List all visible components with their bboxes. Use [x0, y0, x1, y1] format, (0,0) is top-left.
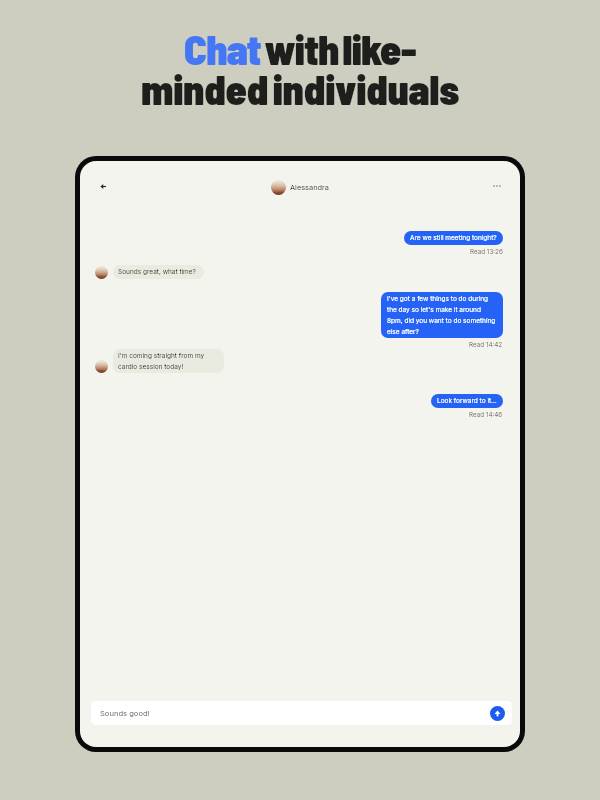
staticText: I've got a few things to do during the d… [387, 295, 497, 335]
staticText: I'm coming straight from my cardio sessi… [118, 352, 219, 370]
button[interactable]: Are we still meeting tonight? [404, 231, 503, 245]
button[interactable]: I've got a few things to do during the d… [381, 292, 503, 338]
staticText: Sounds good! [100, 709, 150, 718]
staticText: Sounds great, what time? [118, 268, 196, 276]
staticText: Read 14:46 [469, 411, 503, 419]
staticText: Read 13:26 [470, 248, 503, 256]
button[interactable]: Back [91, 174, 115, 198]
button[interactable]: Send [490, 706, 505, 721]
button[interactable]: Sounds good! [91, 701, 512, 725]
staticText: Chat with like- [184, 23, 416, 73]
staticText: minded individuals [141, 63, 459, 113]
staticText: Look forward to it... [437, 397, 497, 405]
staticText: Alessandra [290, 183, 329, 192]
button[interactable]: I'm coming straight from my cardio sessi… [113, 349, 224, 373]
button[interactable]: Sounds great, what time? [113, 265, 204, 279]
staticText: Are we still meeting tonight? [410, 234, 497, 242]
staticText: Read 14:42 [469, 341, 503, 349]
button[interactable]: Look forward to it... [431, 394, 503, 408]
button[interactable]: More options [485, 174, 509, 198]
